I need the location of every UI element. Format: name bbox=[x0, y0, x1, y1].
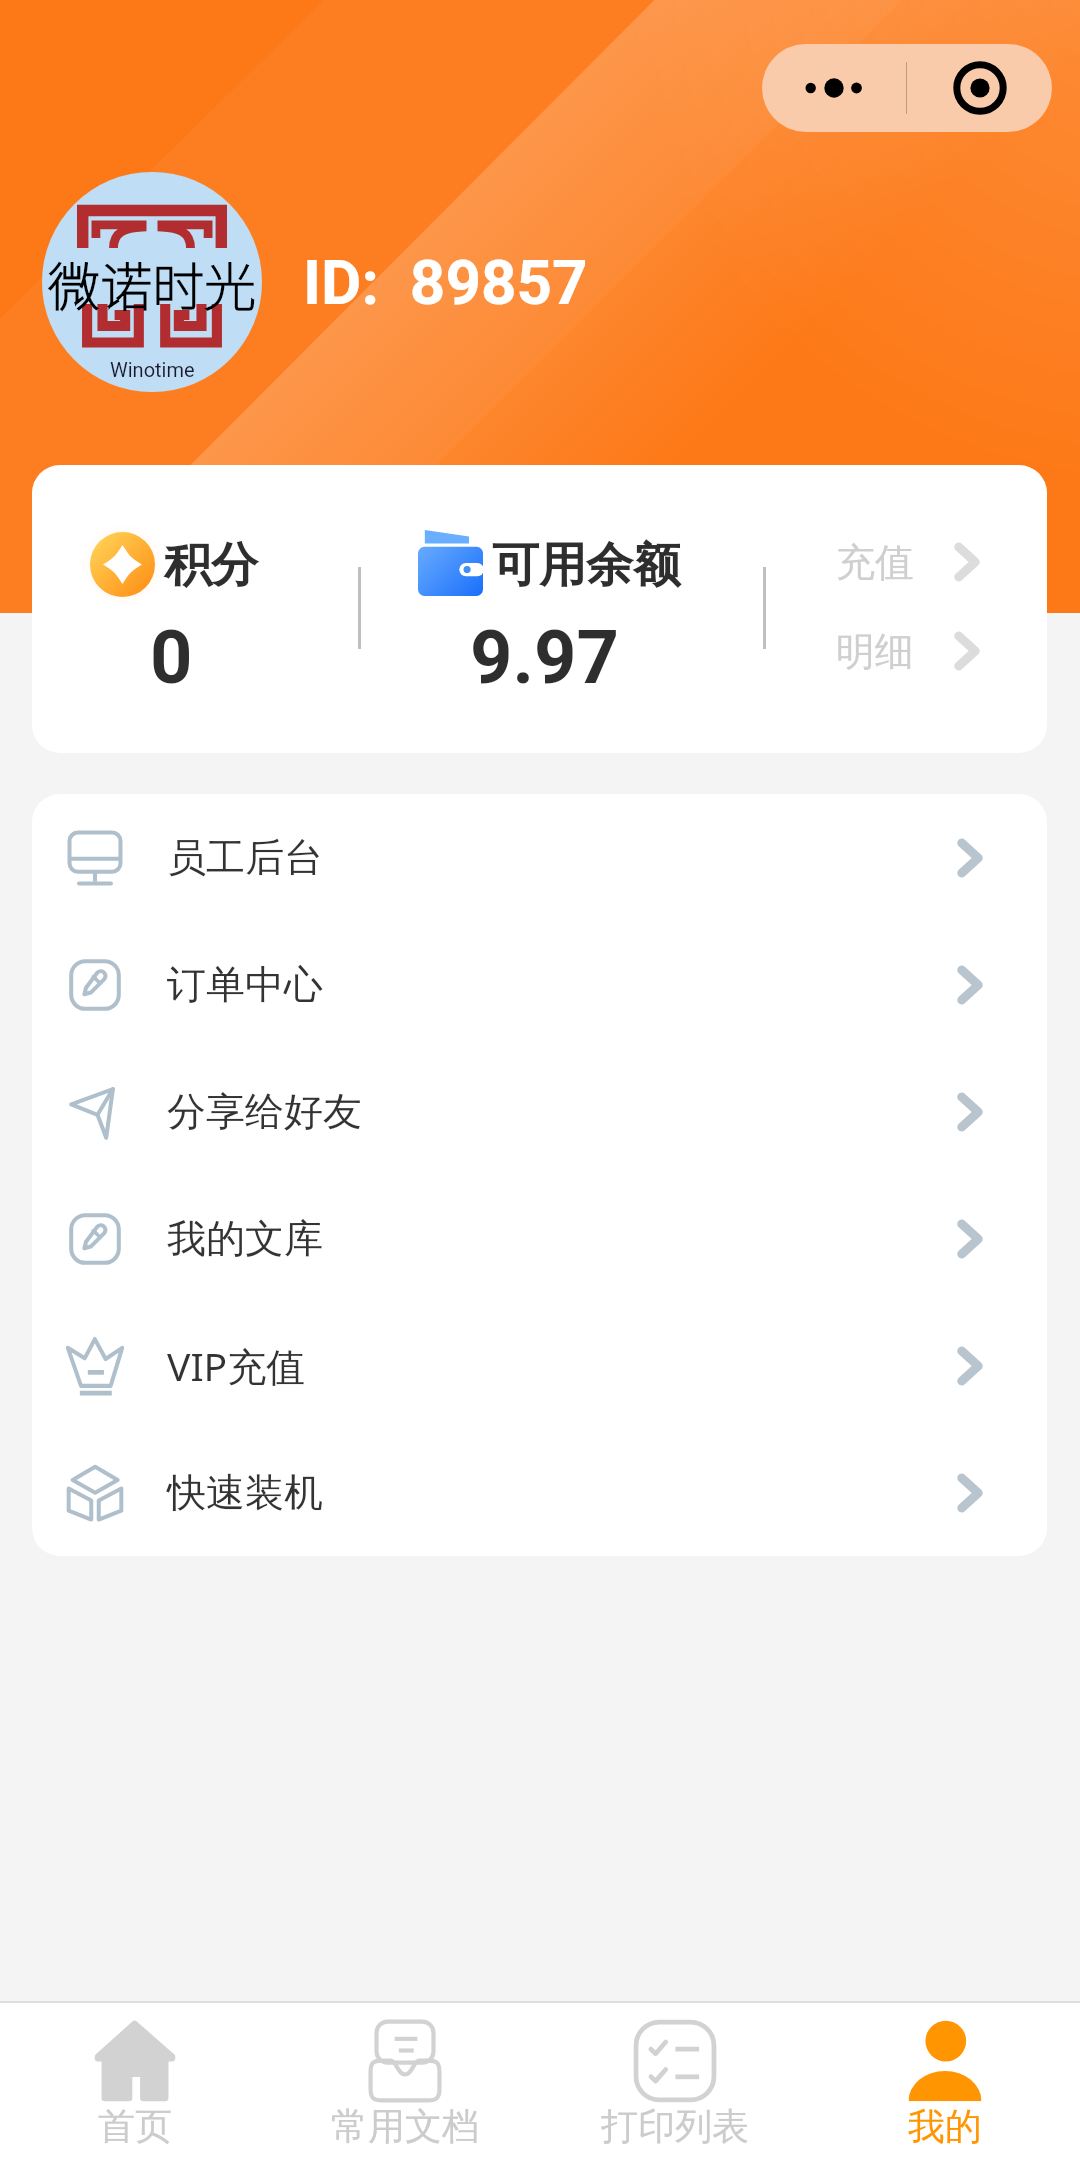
staticText: 常用文档 bbox=[331, 2103, 479, 2150]
staticText: 积分 bbox=[164, 536, 258, 595]
staticText: 订单中心 bbox=[167, 960, 323, 1009]
staticText: 可用余额 bbox=[492, 536, 680, 595]
button[interactable]: 打印列表 bbox=[540, 2003, 810, 2162]
button[interactable]: 我的 bbox=[810, 2003, 1080, 2162]
button[interactable]: More bbox=[762, 44, 906, 132]
button[interactable]: 快速装机 bbox=[32, 1429, 1047, 1556]
button[interactable]: 首页 bbox=[0, 2003, 270, 2162]
staticText: 我的文库 bbox=[167, 1214, 323, 1263]
button[interactable]: 分享给好友 bbox=[32, 1048, 1047, 1175]
staticText: 明细 bbox=[836, 627, 914, 676]
button[interactable]: VIP充值 bbox=[32, 1302, 1047, 1429]
button[interactable]: 积分 bbox=[58, 505, 308, 711]
staticText: 首页 bbox=[98, 2103, 172, 2150]
button[interactable]: Close bbox=[907, 44, 1052, 132]
staticText: 充值 bbox=[836, 538, 914, 587]
staticText: 快速装机 bbox=[167, 1468, 323, 1517]
staticText: 微诺时光 bbox=[48, 246, 257, 321]
button[interactable]: 订单中心 bbox=[32, 921, 1047, 1048]
button[interactable]: 常用文档 bbox=[270, 2003, 540, 2162]
button[interactable]: 可用余额 bbox=[382, 505, 752, 711]
button[interactable]: 我的文库 bbox=[32, 1175, 1047, 1302]
staticText: 分享给好友 bbox=[167, 1087, 362, 1136]
staticText: 员工后台 bbox=[167, 833, 323, 882]
staticText: 打印列表 bbox=[601, 2103, 749, 2150]
staticText: Winotime bbox=[110, 358, 195, 381]
staticText: ID: 89857 bbox=[303, 246, 588, 319]
button[interactable]: 明细 bbox=[836, 615, 1026, 687]
button[interactable]: 充值 bbox=[836, 526, 1026, 598]
staticText: VIP充值 bbox=[167, 1339, 306, 1392]
button[interactable]: 员工后台 bbox=[32, 794, 1047, 921]
staticText: 0 bbox=[150, 614, 193, 701]
staticText: 我的 bbox=[908, 2103, 982, 2150]
staticText: 9.97 bbox=[470, 614, 619, 701]
